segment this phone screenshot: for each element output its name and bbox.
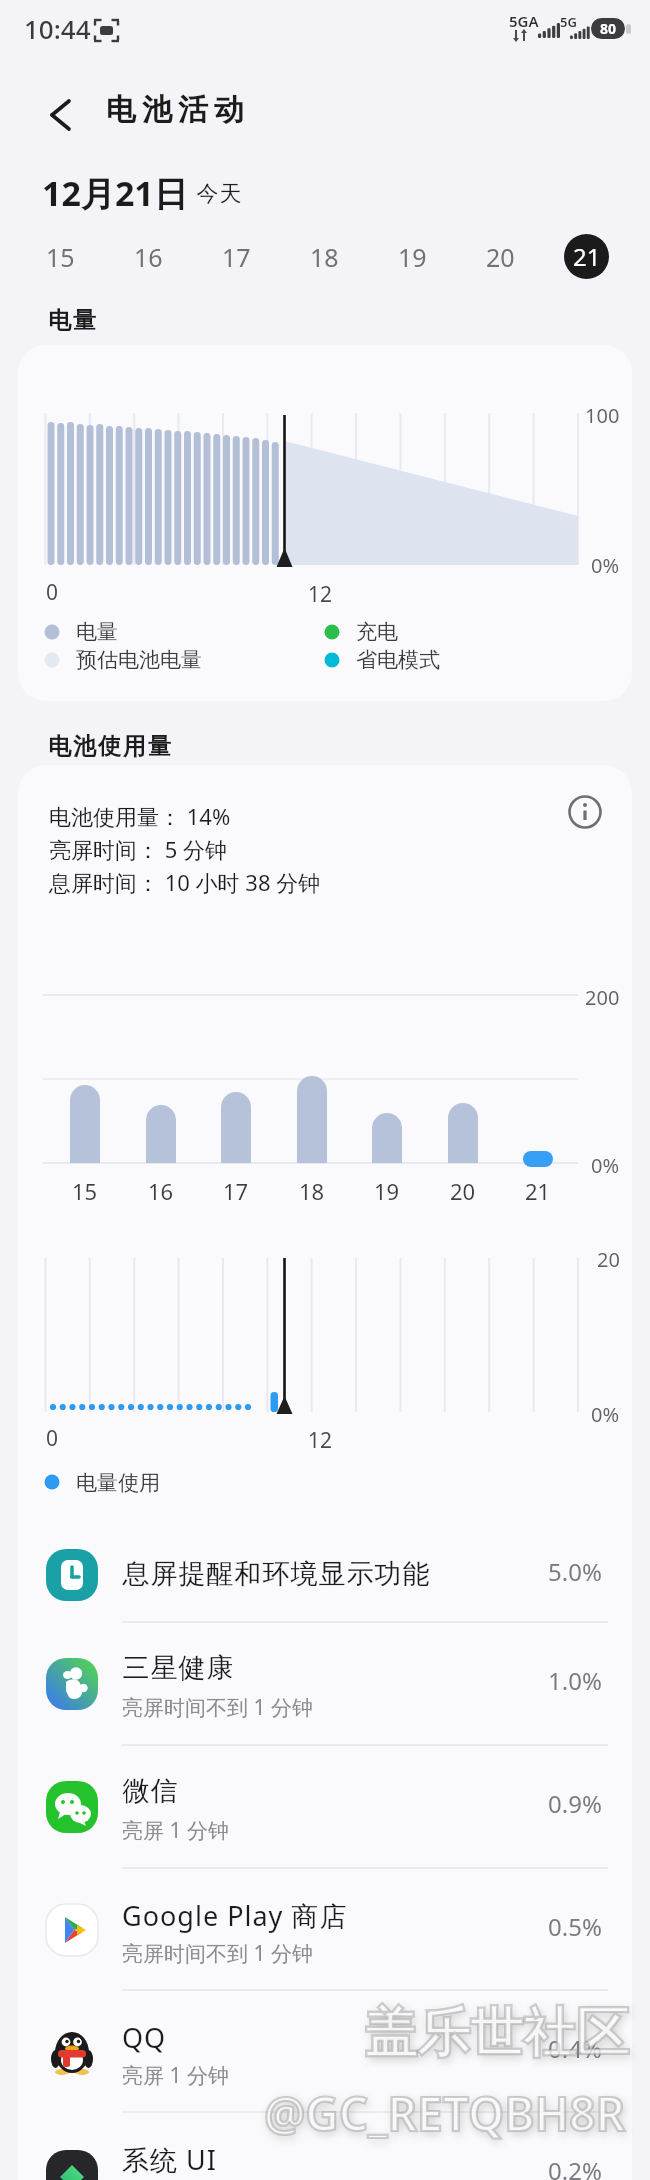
staticText: 10:44 bbox=[24, 11, 91, 46]
staticText: 今天 bbox=[196, 180, 242, 208]
button[interactable] bbox=[566, 793, 606, 833]
staticText: 省电模式 bbox=[356, 647, 440, 673]
staticText: 0% bbox=[591, 1401, 620, 1428]
staticText: 息屏时间： 10 小时 38 分钟 bbox=[49, 867, 321, 897]
staticText: 系统 UI bbox=[122, 2141, 217, 2178]
staticText: 三星健康 bbox=[122, 1651, 234, 1685]
staticText: 12 bbox=[308, 580, 333, 609]
button[interactable] bbox=[18, 1745, 632, 1868]
staticText: 200 bbox=[585, 984, 620, 1011]
staticText: 亮屏 1 分钟 bbox=[122, 2061, 229, 2090]
staticText: 亮屏时间： 5 分钟 bbox=[49, 834, 228, 864]
staticText: 盖乐世社区 bbox=[364, 2000, 629, 2067]
staticText: 5.0% bbox=[548, 1555, 602, 1588]
staticText: 0.9% bbox=[548, 1787, 602, 1820]
staticText: 5G bbox=[560, 13, 577, 31]
button[interactable]: 21 bbox=[564, 234, 609, 279]
staticText: 0% bbox=[591, 552, 620, 579]
staticText: 充电 bbox=[356, 619, 398, 645]
staticText: 电池使用量： 14% bbox=[49, 801, 231, 831]
staticText: 微信 bbox=[122, 1774, 178, 1808]
button[interactable] bbox=[18, 1868, 632, 1990]
staticText: 5GA bbox=[509, 11, 539, 31]
staticText: 预估电池电量 bbox=[76, 647, 202, 673]
staticText: 18 bbox=[299, 1176, 325, 1206]
staticText: 0.2% bbox=[548, 2154, 602, 2180]
button[interactable]: 18 bbox=[294, 234, 354, 279]
button[interactable]: 15 bbox=[30, 234, 90, 279]
staticText: 亮屏时间不到 1 分钟 bbox=[122, 1693, 313, 1722]
button[interactable]: 19 bbox=[382, 234, 442, 279]
staticText: 亮屏时间不到 1 分钟 bbox=[122, 1939, 313, 1968]
staticText: 12月21日 bbox=[42, 170, 188, 216]
staticText: 12 bbox=[308, 1426, 333, 1455]
staticText: 0 bbox=[46, 1424, 59, 1453]
staticText: 0.5% bbox=[548, 1910, 602, 1943]
staticText: 18 bbox=[310, 240, 339, 274]
staticText: @GC_RETQBH8R bbox=[264, 2082, 626, 2145]
staticText: 电池活动 bbox=[103, 91, 247, 129]
staticText: 0.4% bbox=[548, 2032, 602, 2065]
staticText: 电量使用 bbox=[76, 1470, 160, 1496]
staticText: 16 bbox=[148, 1176, 174, 1206]
staticText: 0% bbox=[591, 1152, 620, 1179]
button[interactable] bbox=[18, 1990, 632, 2112]
staticText: 20 bbox=[597, 1246, 620, 1273]
staticText: 亮屏 1 分钟 bbox=[122, 1816, 229, 1845]
staticText: 20 bbox=[486, 240, 515, 274]
staticText: Google Play 商店 bbox=[122, 1897, 348, 1934]
staticText: 电量 bbox=[76, 619, 118, 645]
button[interactable] bbox=[18, 2112, 632, 2180]
staticText: 盖乐世社区 bbox=[364, 2000, 629, 2067]
staticText: QQ bbox=[122, 2019, 167, 2056]
staticText: 19 bbox=[398, 240, 427, 274]
staticText: 0 bbox=[46, 578, 59, 607]
staticText: 16 bbox=[134, 240, 163, 274]
button[interactable] bbox=[18, 1528, 632, 1622]
staticText: 息屏提醒和环境显示功能 bbox=[122, 1557, 430, 1591]
staticText: 17 bbox=[223, 1176, 249, 1206]
staticText: 1.0% bbox=[548, 1664, 602, 1697]
staticText: 电量 bbox=[47, 306, 97, 335]
button[interactable]: 16 bbox=[118, 234, 178, 279]
button[interactable]: 20 bbox=[470, 234, 530, 279]
button[interactable]: 17 bbox=[206, 234, 266, 279]
staticText: 17 bbox=[222, 240, 251, 274]
staticText: 100 bbox=[585, 402, 620, 429]
staticText: 15 bbox=[46, 240, 75, 274]
staticText: 21 bbox=[525, 1176, 551, 1206]
button[interactable] bbox=[18, 1622, 632, 1745]
button[interactable] bbox=[40, 92, 88, 140]
staticText: 21 bbox=[573, 240, 601, 273]
staticText: 电池使用量 bbox=[47, 732, 172, 761]
staticText: 19 bbox=[374, 1176, 400, 1206]
staticText: 15 bbox=[72, 1176, 98, 1206]
staticText: 20 bbox=[450, 1176, 476, 1206]
staticText: 80 bbox=[600, 19, 617, 38]
staticText: @GC_RETQBH8R bbox=[264, 2082, 626, 2145]
